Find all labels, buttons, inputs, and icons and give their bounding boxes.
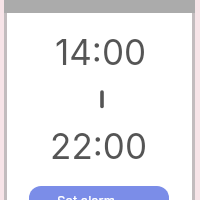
other: until — [99, 91, 105, 108]
staticText: Set alarm — [57, 193, 116, 200]
staticText: 22:00 — [6, 125, 191, 167]
button[interactable]: Set alarm — [29, 186, 169, 200]
staticText: 14:00 — [8, 31, 193, 73]
